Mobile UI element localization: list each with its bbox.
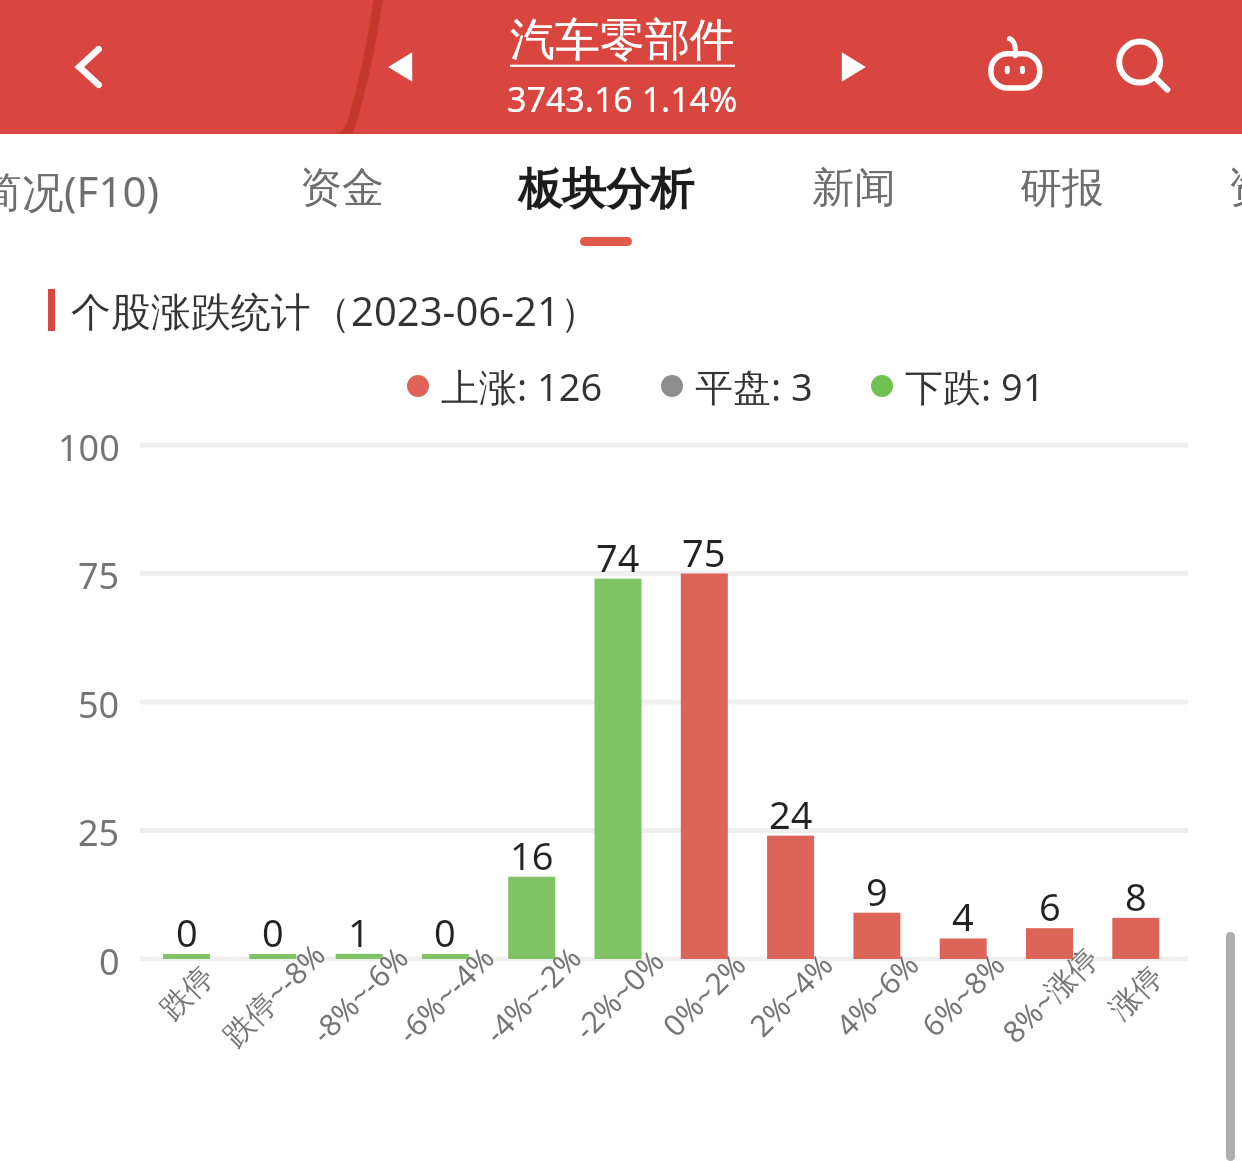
staticText: 24 [769, 788, 813, 840]
button[interactable]: AI assistant [958, 0, 1074, 134]
staticText: 上涨: 126 [441, 360, 603, 412]
button[interactable]: Previous sector [356, 30, 446, 104]
button[interactable]: 汽车零部件 [507, 12, 738, 122]
staticText: 8%~涨停 [993, 938, 1107, 1051]
staticText: -2%~0% [565, 941, 672, 1048]
staticText: 3743.16 1.14% [507, 76, 738, 122]
staticText: 跌停 [152, 958, 222, 1028]
staticText: 涨停 [1101, 958, 1171, 1028]
staticText: 4 [952, 890, 974, 942]
staticText: 4%~6% [826, 944, 927, 1045]
staticText: 6 [1039, 880, 1061, 932]
staticText: 板块分析 [518, 162, 694, 217]
staticText: 平盘: 3 [695, 360, 813, 412]
button[interactable]: Next sector [808, 30, 898, 104]
staticText: 0 [176, 906, 198, 958]
button[interactable]: 简况(F10) [0, 134, 160, 270]
staticText: 资 [1228, 162, 1242, 215]
staticText: -8%~-6% [302, 937, 417, 1052]
staticText: 1 [348, 906, 370, 958]
staticText: 74 [596, 531, 640, 583]
staticText: 16 [510, 829, 554, 881]
button[interactable]: 研报 [1020, 134, 1104, 270]
button[interactable]: Search [1086, 0, 1202, 134]
staticText: 100 [58, 423, 120, 472]
staticText: 9 [866, 865, 888, 917]
staticText: 8 [1125, 870, 1147, 922]
staticText: 简况(F10) [0, 162, 160, 219]
staticText: 0%~2% [653, 944, 754, 1045]
staticText: 下跌: 91 [905, 360, 1045, 412]
staticText: -6%~-4% [388, 937, 503, 1052]
staticText: 汽车零部件 [510, 12, 735, 69]
staticText: -4%~-2% [475, 937, 590, 1052]
staticText: 个股涨跌统计（2023-06-21） [71, 283, 600, 338]
button[interactable]: 资 [1228, 162, 1242, 215]
staticText: 研报 [1020, 162, 1104, 215]
staticText: 50 [78, 680, 120, 729]
button[interactable]: Back [40, 0, 140, 134]
button[interactable]: 上涨: 126 [407, 360, 603, 412]
staticText: 75 [682, 526, 726, 578]
button[interactable]: 平盘: 3 [661, 360, 813, 412]
staticText: 新闻 [812, 162, 896, 215]
staticText: 0 [99, 937, 120, 986]
button[interactable]: 下跌: 91 [871, 360, 1045, 412]
button[interactable]: 新闻 [812, 134, 896, 270]
staticText: 0 [434, 906, 456, 958]
staticText: 75 [78, 551, 120, 600]
staticText: 跌停~-8% [213, 934, 334, 1055]
staticText: 资金 [300, 162, 384, 215]
staticText: 2%~4% [740, 944, 841, 1045]
button[interactable]: 板块分析 [518, 134, 694, 270]
staticText: 6%~8% [912, 944, 1013, 1045]
staticText: 0 [262, 906, 284, 958]
staticText: 25 [78, 808, 120, 857]
button[interactable]: 资金 [300, 134, 384, 270]
